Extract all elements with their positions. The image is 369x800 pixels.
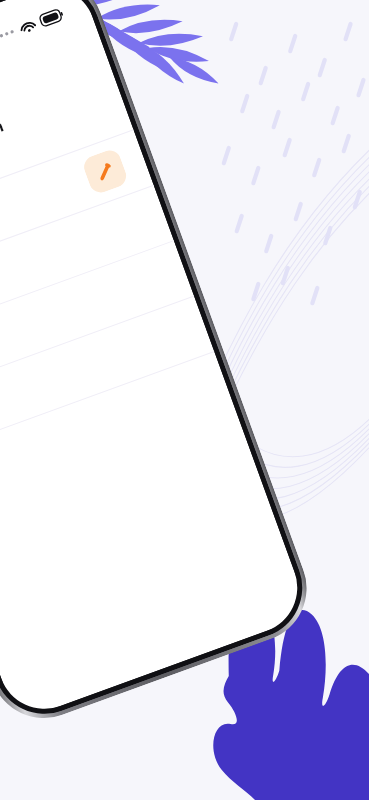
staticText: Yusbek Botirjonovich [0, 114, 7, 193]
button[interactable]: Settings [0, 241, 194, 402]
button[interactable]: Language [0, 296, 214, 458]
button[interactable]: Edit [81, 147, 129, 196]
button[interactable]: Payment [0, 186, 174, 347]
button[interactable]: History [0, 130, 154, 291]
